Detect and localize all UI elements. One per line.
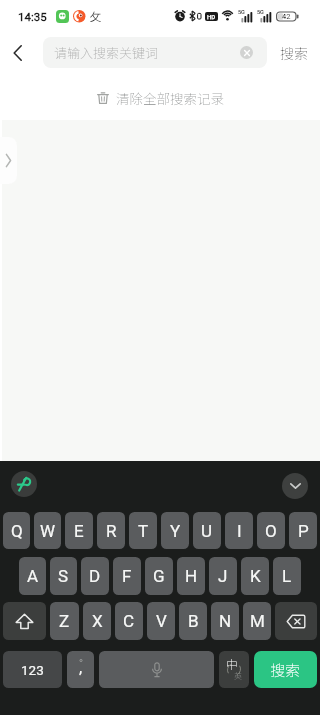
button[interactable]: B xyxy=(179,602,207,640)
button[interactable] xyxy=(11,471,37,497)
button[interactable] xyxy=(0,28,36,78)
button[interactable]: 搜索 xyxy=(267,28,320,78)
staticText: B xyxy=(188,611,199,631)
staticText: W xyxy=(40,521,56,541)
button[interactable]: M xyxy=(243,602,271,640)
button[interactable] xyxy=(99,651,214,688)
staticText: 5G xyxy=(238,9,245,15)
button[interactable]: F xyxy=(113,557,141,595)
staticText: I xyxy=(237,521,242,541)
staticText: G xyxy=(153,566,165,586)
button[interactable]: P xyxy=(289,512,317,549)
staticText: 14:35 xyxy=(18,10,47,23)
button[interactable]: N xyxy=(211,602,239,640)
staticText: 清除全部搜索记录 xyxy=(116,88,224,108)
button[interactable] xyxy=(3,602,46,640)
button[interactable]: E xyxy=(65,512,93,549)
button[interactable] xyxy=(275,602,317,640)
staticText: U xyxy=(201,521,213,541)
button[interactable] xyxy=(0,137,17,184)
button[interactable]: S xyxy=(50,557,77,595)
staticText: 123 xyxy=(21,662,44,678)
staticText: F xyxy=(122,566,132,586)
staticText: 搜索 xyxy=(270,659,301,681)
staticText: X xyxy=(92,611,103,631)
button[interactable]: 中 xyxy=(219,651,249,688)
staticText: J xyxy=(218,566,228,586)
staticText: S xyxy=(58,566,69,586)
staticText: V xyxy=(156,611,167,631)
staticText: , xyxy=(79,658,83,677)
button[interactable]: 清除全部搜索记录 xyxy=(97,88,224,108)
staticText: 5G xyxy=(257,9,264,15)
button[interactable]: 请输入搜索关键词 xyxy=(43,37,267,68)
button[interactable]: D xyxy=(81,557,109,595)
staticText: 42 xyxy=(282,12,291,21)
staticText: O xyxy=(265,521,277,541)
staticText: 中 xyxy=(226,656,238,673)
staticText: M xyxy=(250,611,265,631)
button[interactable]: 123 xyxy=(3,651,62,688)
staticText: Y xyxy=(170,521,181,541)
button[interactable] xyxy=(282,473,308,499)
button[interactable]: V xyxy=(147,602,175,640)
staticText: N xyxy=(219,611,232,631)
staticText: E xyxy=(74,521,84,541)
staticText: D xyxy=(89,566,101,586)
staticText: K xyxy=(250,566,261,586)
button[interactable]: , xyxy=(67,651,94,688)
button[interactable]: H xyxy=(177,557,205,595)
button[interactable]: J xyxy=(209,557,237,595)
button[interactable]: T xyxy=(129,512,157,549)
button[interactable]: X xyxy=(83,602,111,640)
button[interactable]: R xyxy=(97,512,125,549)
button[interactable]: Y xyxy=(161,512,189,549)
staticText: L xyxy=(282,566,292,586)
button[interactable]: K xyxy=(241,557,269,595)
button[interactable]: A xyxy=(19,557,46,595)
button[interactable]: I xyxy=(225,512,253,549)
staticText: P xyxy=(298,521,309,541)
button[interactable]: O xyxy=(257,512,285,549)
button[interactable]: 搜索 xyxy=(254,651,317,688)
button[interactable]: W xyxy=(34,512,61,549)
button[interactable]: U xyxy=(193,512,221,549)
button[interactable]: L xyxy=(273,557,301,595)
button[interactable] xyxy=(240,46,253,59)
staticText: Q xyxy=(11,521,23,541)
staticText: C xyxy=(123,611,135,631)
staticText: A xyxy=(27,566,39,586)
button[interactable]: C xyxy=(115,602,143,640)
staticText: T xyxy=(138,521,149,541)
button[interactable]: G xyxy=(145,557,173,595)
staticText: 英 xyxy=(234,670,242,682)
staticText: 攵 xyxy=(90,8,101,24)
staticText: H xyxy=(185,566,198,586)
staticText: HD xyxy=(207,13,216,20)
button[interactable]: Q xyxy=(3,512,30,549)
button[interactable]: Z xyxy=(50,602,79,640)
staticText: R xyxy=(106,521,117,541)
staticText: Z xyxy=(59,611,70,631)
staticText: 请输入搜索关键词 xyxy=(54,43,159,62)
staticText: 搜索 xyxy=(280,43,308,63)
